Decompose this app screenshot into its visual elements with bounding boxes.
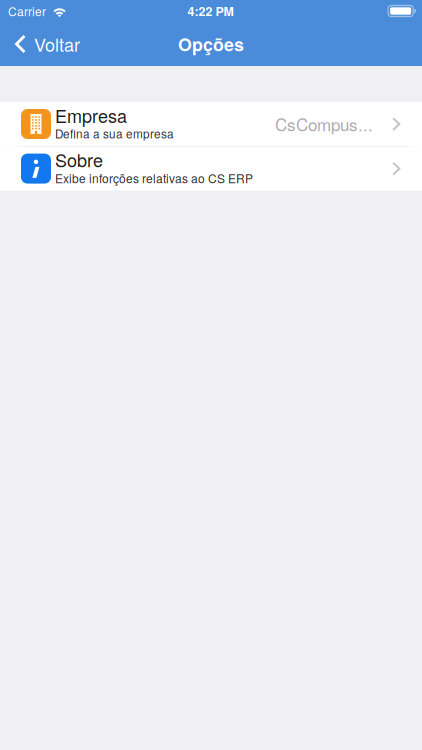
staticText: 4:22 PM: [187, 2, 233, 20]
staticText: CsCompus...: [275, 112, 373, 136]
staticText: Empresa: [55, 102, 127, 128]
staticText: Sobre: [55, 147, 103, 172]
button[interactable]: Voltar: [0, 22, 90, 66]
staticText: Voltar: [34, 31, 80, 57]
button[interactable]: Empresa: [0, 102, 422, 146]
staticText: Defina a sua empresa: [55, 125, 174, 142]
staticText: Carrier: [8, 2, 46, 20]
button[interactable]: Sobre: [0, 147, 422, 191]
staticText: Exibe inforções relativas ao CS ERP: [55, 169, 253, 187]
staticText: Opções: [178, 31, 244, 57]
